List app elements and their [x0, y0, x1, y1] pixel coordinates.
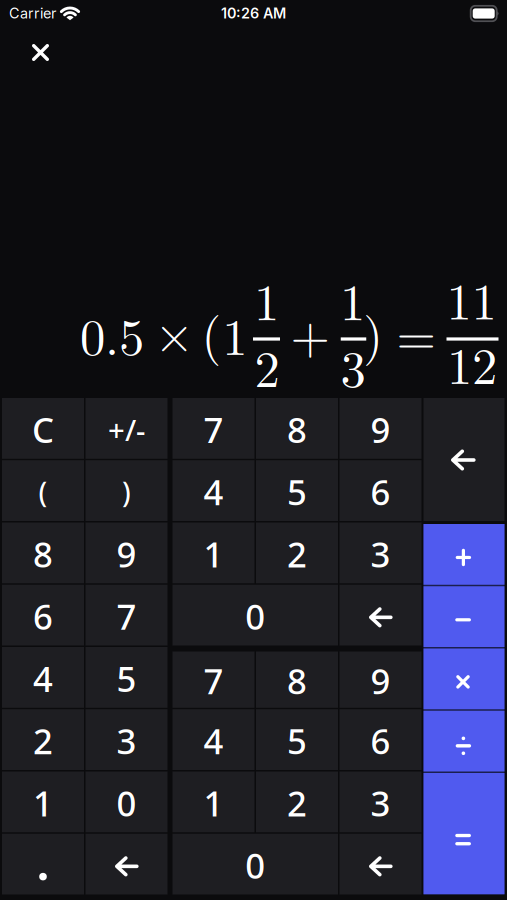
button[interactable]: ( [2, 460, 84, 521]
button[interactable]: 3 [339, 771, 421, 832]
button[interactable] [339, 585, 421, 646]
button[interactable]: 7 [172, 398, 254, 459]
button[interactable] [423, 524, 504, 585]
button[interactable]: 0 [85, 771, 167, 832]
button[interactable]: 8 [256, 398, 338, 459]
staticText: 1 [254, 263, 279, 335]
staticText: Carrier [9, 5, 56, 22]
staticText: 10:26 AM [221, 5, 286, 22]
staticText: 0 [116, 780, 136, 826]
staticText: × [154, 295, 193, 366]
staticText: 0 [245, 842, 265, 888]
button[interactable]: ) [85, 460, 167, 521]
button[interactable]: C [2, 398, 84, 459]
staticText: 5 [287, 718, 307, 764]
button[interactable]: 1 [172, 522, 254, 583]
staticText: 0.5 [80, 298, 144, 370]
staticText: 3 [340, 330, 365, 402]
button[interactable]: 7 [85, 585, 167, 646]
button[interactable]: 8 [256, 651, 338, 708]
button[interactable]: 1 [172, 771, 254, 832]
button[interactable]: 5 [256, 460, 338, 521]
button[interactable]: 1 [2, 771, 84, 832]
staticText: 1 [203, 780, 223, 826]
staticText: 9 [370, 407, 390, 453]
staticText: 5 [116, 656, 136, 702]
button[interactable]: 3 [85, 709, 167, 770]
staticText: 3 [116, 718, 136, 764]
staticText: 1 [203, 531, 223, 577]
staticText: 6 [370, 718, 390, 764]
button[interactable]: 9 [85, 522, 167, 583]
staticText: 6 [33, 593, 53, 639]
button[interactable] [423, 711, 504, 772]
staticText: 1 [222, 298, 247, 370]
button[interactable] [423, 398, 504, 521]
staticText: C [32, 407, 54, 453]
button[interactable] [2, 834, 84, 895]
button[interactable]: 2 [256, 771, 338, 832]
button[interactable] [423, 586, 504, 647]
staticText: 9 [116, 531, 136, 577]
staticText: ) [122, 473, 131, 510]
button[interactable]: +/- [85, 398, 167, 459]
staticText: 8 [287, 407, 307, 453]
button[interactable]: 4 [172, 460, 254, 521]
button[interactable] [23, 35, 57, 69]
button[interactable]: 5 [85, 647, 167, 708]
button[interactable] [85, 834, 167, 895]
button[interactable]: 9 [339, 398, 421, 459]
button[interactable]: 0 [172, 834, 338, 895]
staticText: 2 [287, 531, 307, 577]
staticText: = [396, 297, 435, 369]
staticText: 7 [203, 658, 223, 704]
staticText: 1 [340, 263, 365, 335]
staticText: ( [38, 473, 47, 510]
button[interactable]: 2 [256, 522, 338, 583]
staticText: 2 [254, 330, 279, 402]
staticText: ) [363, 296, 383, 368]
staticText: 7 [116, 593, 136, 639]
staticText: ( [202, 296, 222, 368]
button[interactable] [423, 648, 504, 709]
button[interactable]: 0 [172, 585, 338, 646]
staticText: 3 [370, 780, 390, 826]
button[interactable]: 7 [172, 651, 254, 708]
staticText: 1 [33, 780, 53, 826]
staticText: 4 [203, 469, 223, 515]
button[interactable]: 8 [2, 522, 84, 583]
staticText: 11 [446, 262, 496, 334]
button[interactable]: 6 [2, 585, 84, 646]
button[interactable]: 4 [2, 647, 84, 708]
button[interactable] [339, 834, 421, 895]
staticText: 3 [370, 531, 390, 577]
staticText: 8 [33, 531, 53, 577]
staticText: 4 [203, 718, 223, 764]
staticText: 4 [33, 656, 53, 702]
staticText: 8 [287, 658, 307, 704]
staticText: +/- [108, 410, 145, 449]
staticText: 5 [287, 469, 307, 515]
staticText: 0 [245, 593, 265, 639]
button[interactable]: 4 [172, 709, 254, 770]
staticText: + [290, 297, 329, 368]
staticText: 6 [370, 469, 390, 515]
button[interactable]: 3 [339, 522, 421, 583]
button[interactable]: 9 [339, 651, 421, 708]
button[interactable]: 5 [256, 709, 338, 770]
staticText: 12 [447, 327, 497, 399]
staticText: 9 [370, 658, 390, 704]
button[interactable] [423, 773, 504, 894]
staticText: 7 [203, 407, 223, 453]
button[interactable]: 2 [2, 709, 84, 770]
button[interactable]: 6 [339, 460, 421, 521]
button[interactable]: 6 [339, 709, 421, 770]
staticText: 2 [33, 718, 53, 764]
staticText: 2 [287, 780, 307, 826]
